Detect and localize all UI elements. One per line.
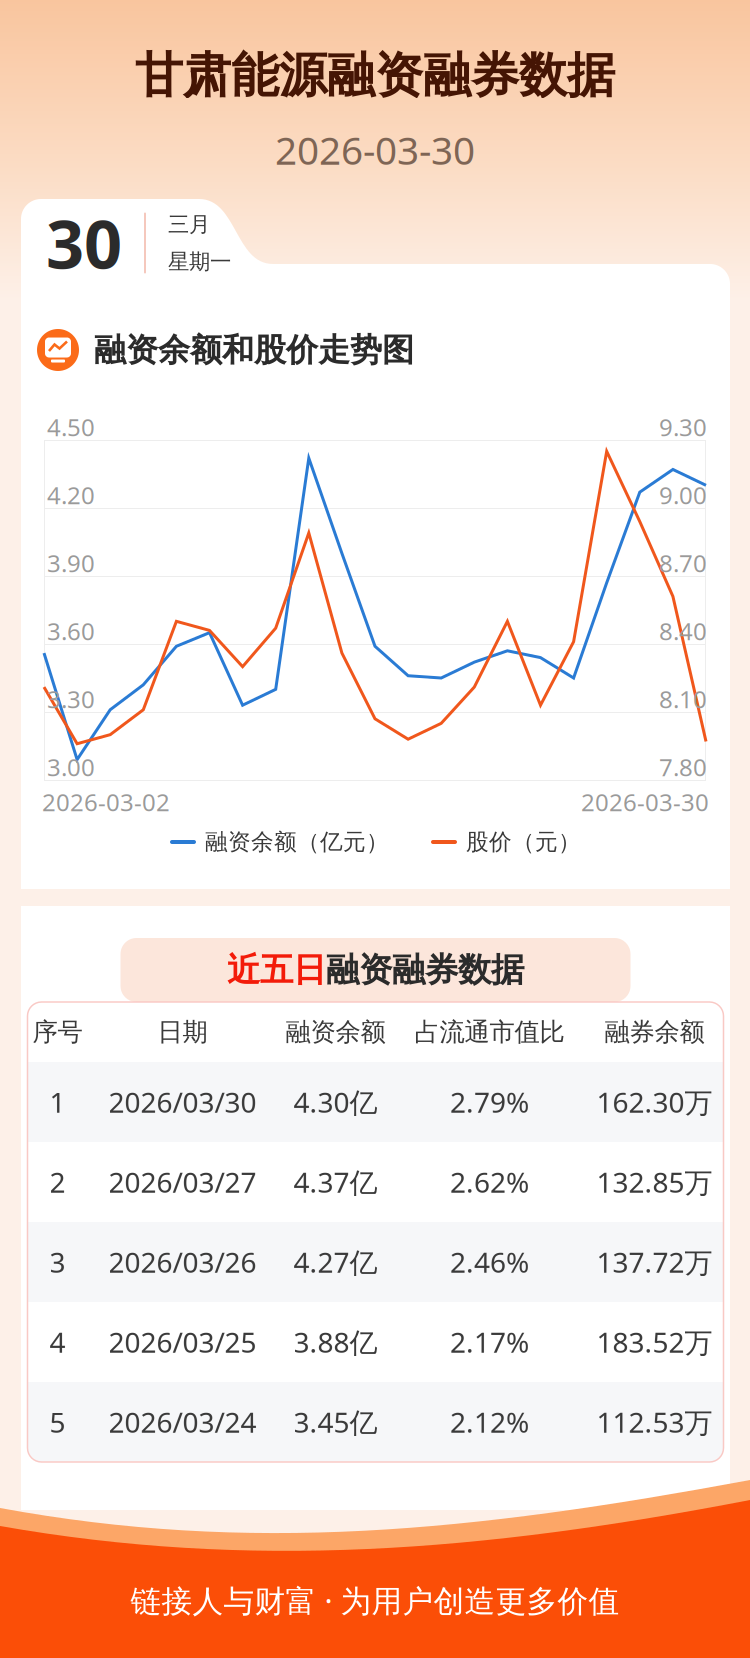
staticText: 112.53万 (596, 1403, 712, 1441)
staticText: 融资余额（亿元） (205, 828, 389, 856)
staticText: 2026-03-30 (581, 786, 709, 818)
staticText: 137.72万 (596, 1243, 712, 1281)
staticText: 5 (49, 1403, 65, 1441)
staticText: 4.37亿 (293, 1163, 377, 1201)
staticText: 4.50 (47, 411, 95, 443)
staticText: 3.88亿 (293, 1323, 377, 1361)
staticText: 2 (49, 1163, 65, 1201)
staticText: 2026/03/26 (108, 1243, 256, 1281)
staticText: 甘肃能源融资融券数据 (135, 46, 615, 105)
staticText: 7.80 (659, 751, 707, 783)
staticText: 2026-03-02 (42, 786, 170, 818)
staticText: 2026-03-30 (275, 124, 475, 175)
staticText: 日期 (157, 1016, 207, 1047)
staticText: 2.46% (450, 1243, 529, 1281)
staticText: 融资融券数据 (326, 949, 524, 990)
staticText: 8.40 (659, 615, 707, 647)
staticText: 162.30万 (596, 1083, 712, 1121)
staticText: 9.00 (659, 479, 707, 511)
staticText: 2026/03/30 (108, 1083, 256, 1121)
staticText: 融资余额和股价走势图 (94, 330, 414, 370)
staticText: 132.85万 (596, 1163, 712, 1201)
staticText: 9.30 (659, 411, 707, 443)
staticText: 8.10 (659, 683, 707, 715)
staticText: 3.90 (47, 547, 95, 579)
staticText: 序号 (32, 1016, 82, 1047)
staticText: 8.70 (659, 547, 707, 579)
staticText: 3.45亿 (293, 1403, 377, 1441)
staticText: 2026/03/25 (108, 1323, 256, 1361)
staticText: 3.60 (47, 615, 95, 647)
staticText: 2.12% (450, 1403, 529, 1441)
staticText: 4.20 (47, 479, 95, 511)
staticText: 融券余额 (604, 1016, 704, 1047)
staticText: 3.30 (47, 683, 95, 715)
staticText: 1 (49, 1083, 65, 1121)
staticText: 2026/03/27 (108, 1163, 256, 1201)
staticText: 链接人与财富 · 为用户创造更多价值 (130, 1580, 619, 1621)
staticText: 2.17% (450, 1323, 529, 1361)
staticText: 2026/03/24 (108, 1403, 256, 1441)
staticText: 3 (49, 1243, 65, 1281)
staticText: 近五日 (227, 949, 326, 990)
staticText: 4 (49, 1323, 65, 1361)
staticText: 183.52万 (596, 1323, 712, 1361)
staticText: 4.30亿 (293, 1083, 377, 1121)
staticText: 4.27亿 (293, 1243, 377, 1281)
staticText: 占流通市值比 (414, 1016, 564, 1047)
staticText: 星期一 (168, 248, 231, 275)
staticText: 2.62% (450, 1163, 529, 1201)
staticText: 股价（元） (466, 828, 581, 856)
staticText: 融资余额 (285, 1016, 385, 1047)
staticText: 三月 (168, 211, 210, 237)
staticText: 3.00 (47, 751, 95, 783)
staticText: 30 (46, 199, 122, 287)
staticText: 2.79% (450, 1083, 529, 1121)
